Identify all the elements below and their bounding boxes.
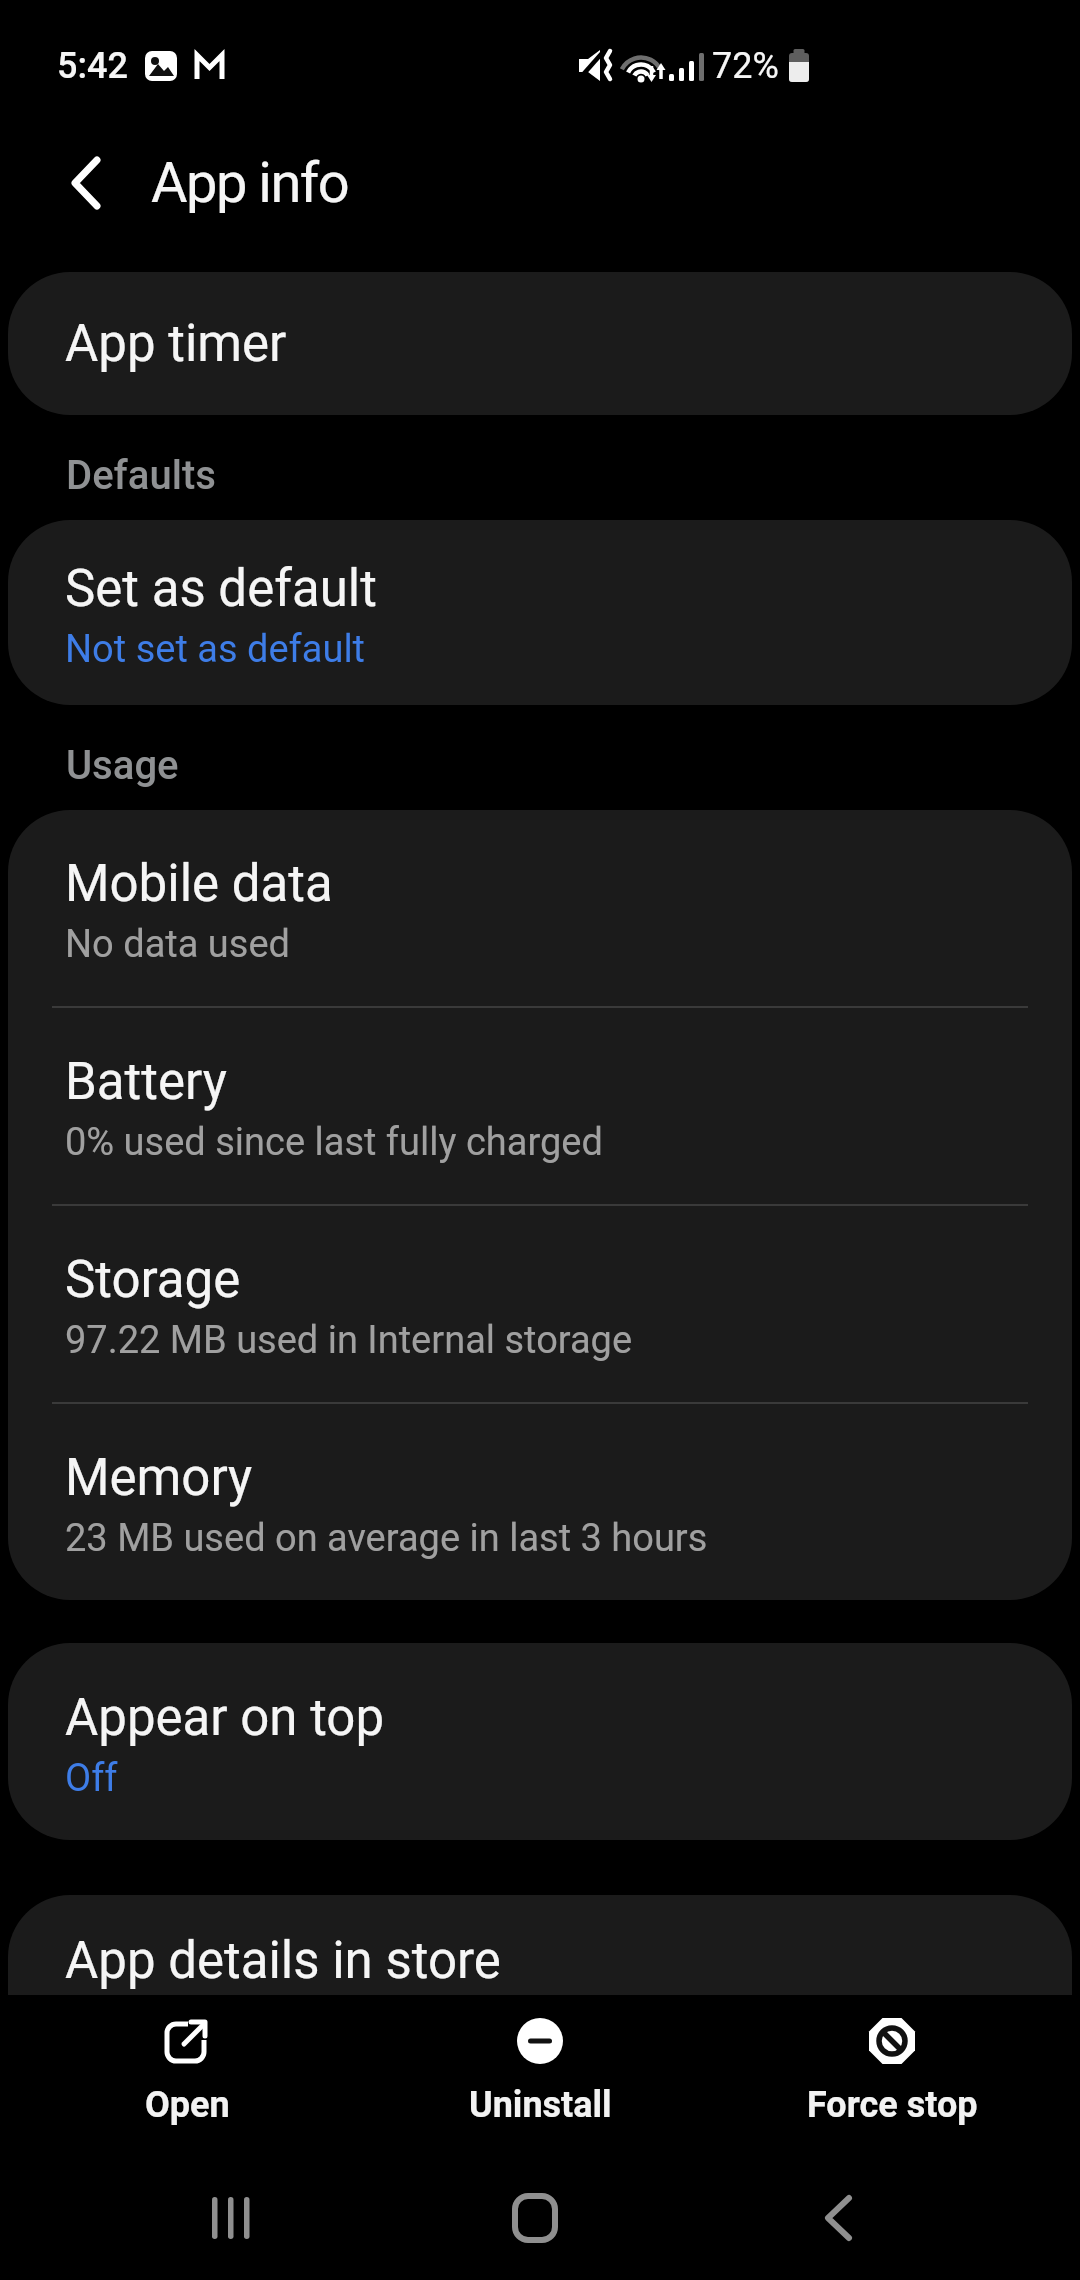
staticText: Appear on top — [65, 1688, 385, 1748]
button[interactable] — [513, 2196, 557, 2240]
button[interactable] — [67, 158, 101, 208]
staticText: 0% used since last fully charged — [65, 1120, 603, 1165]
staticText: Off — [65, 1756, 118, 1801]
button[interactable]: Set as default — [8, 520, 1072, 705]
staticText: Not set as default — [65, 627, 366, 672]
staticText: App details in store — [65, 1931, 501, 1991]
button[interactable]: Open — [7, 2018, 367, 2126]
button[interactable] — [822, 2196, 854, 2240]
button[interactable]: Uninstall — [360, 2018, 720, 2126]
staticText: Set as default — [65, 559, 377, 619]
button[interactable]: Mobile data — [8, 810, 1072, 1006]
button[interactable] — [212, 2197, 256, 2239]
staticText: Defaults — [66, 452, 216, 499]
staticText: Memory — [65, 1448, 253, 1508]
staticText: 97.22 MB used in Internal storage — [65, 1318, 633, 1363]
button[interactable]: Appear on top — [8, 1643, 1072, 1840]
staticText: Battery — [65, 1052, 227, 1112]
staticText: 5:42 — [57, 45, 128, 87]
button[interactable]: Storage — [8, 1206, 1072, 1402]
button[interactable]: App timer — [8, 272, 1072, 415]
staticText: Force stop — [807, 2084, 978, 2126]
staticText: Mobile data — [65, 854, 333, 914]
staticText: Uninstall — [469, 2084, 612, 2126]
staticText: 23 MB used on average in last 3 hours — [65, 1516, 708, 1561]
button[interactable]: App details in store — [8, 1895, 1072, 2095]
button[interactable]: Force stop — [712, 2018, 1072, 2126]
staticText: 72% — [712, 45, 779, 87]
staticText: App timer — [65, 314, 287, 374]
staticText: Storage — [65, 1250, 241, 1310]
staticText: App info — [151, 150, 349, 216]
staticText: Usage — [66, 742, 179, 789]
staticText: No data used — [65, 922, 290, 967]
button[interactable]: Memory — [8, 1404, 1072, 1600]
button[interactable]: Battery — [8, 1008, 1072, 1204]
staticText: Open — [145, 2084, 230, 2126]
